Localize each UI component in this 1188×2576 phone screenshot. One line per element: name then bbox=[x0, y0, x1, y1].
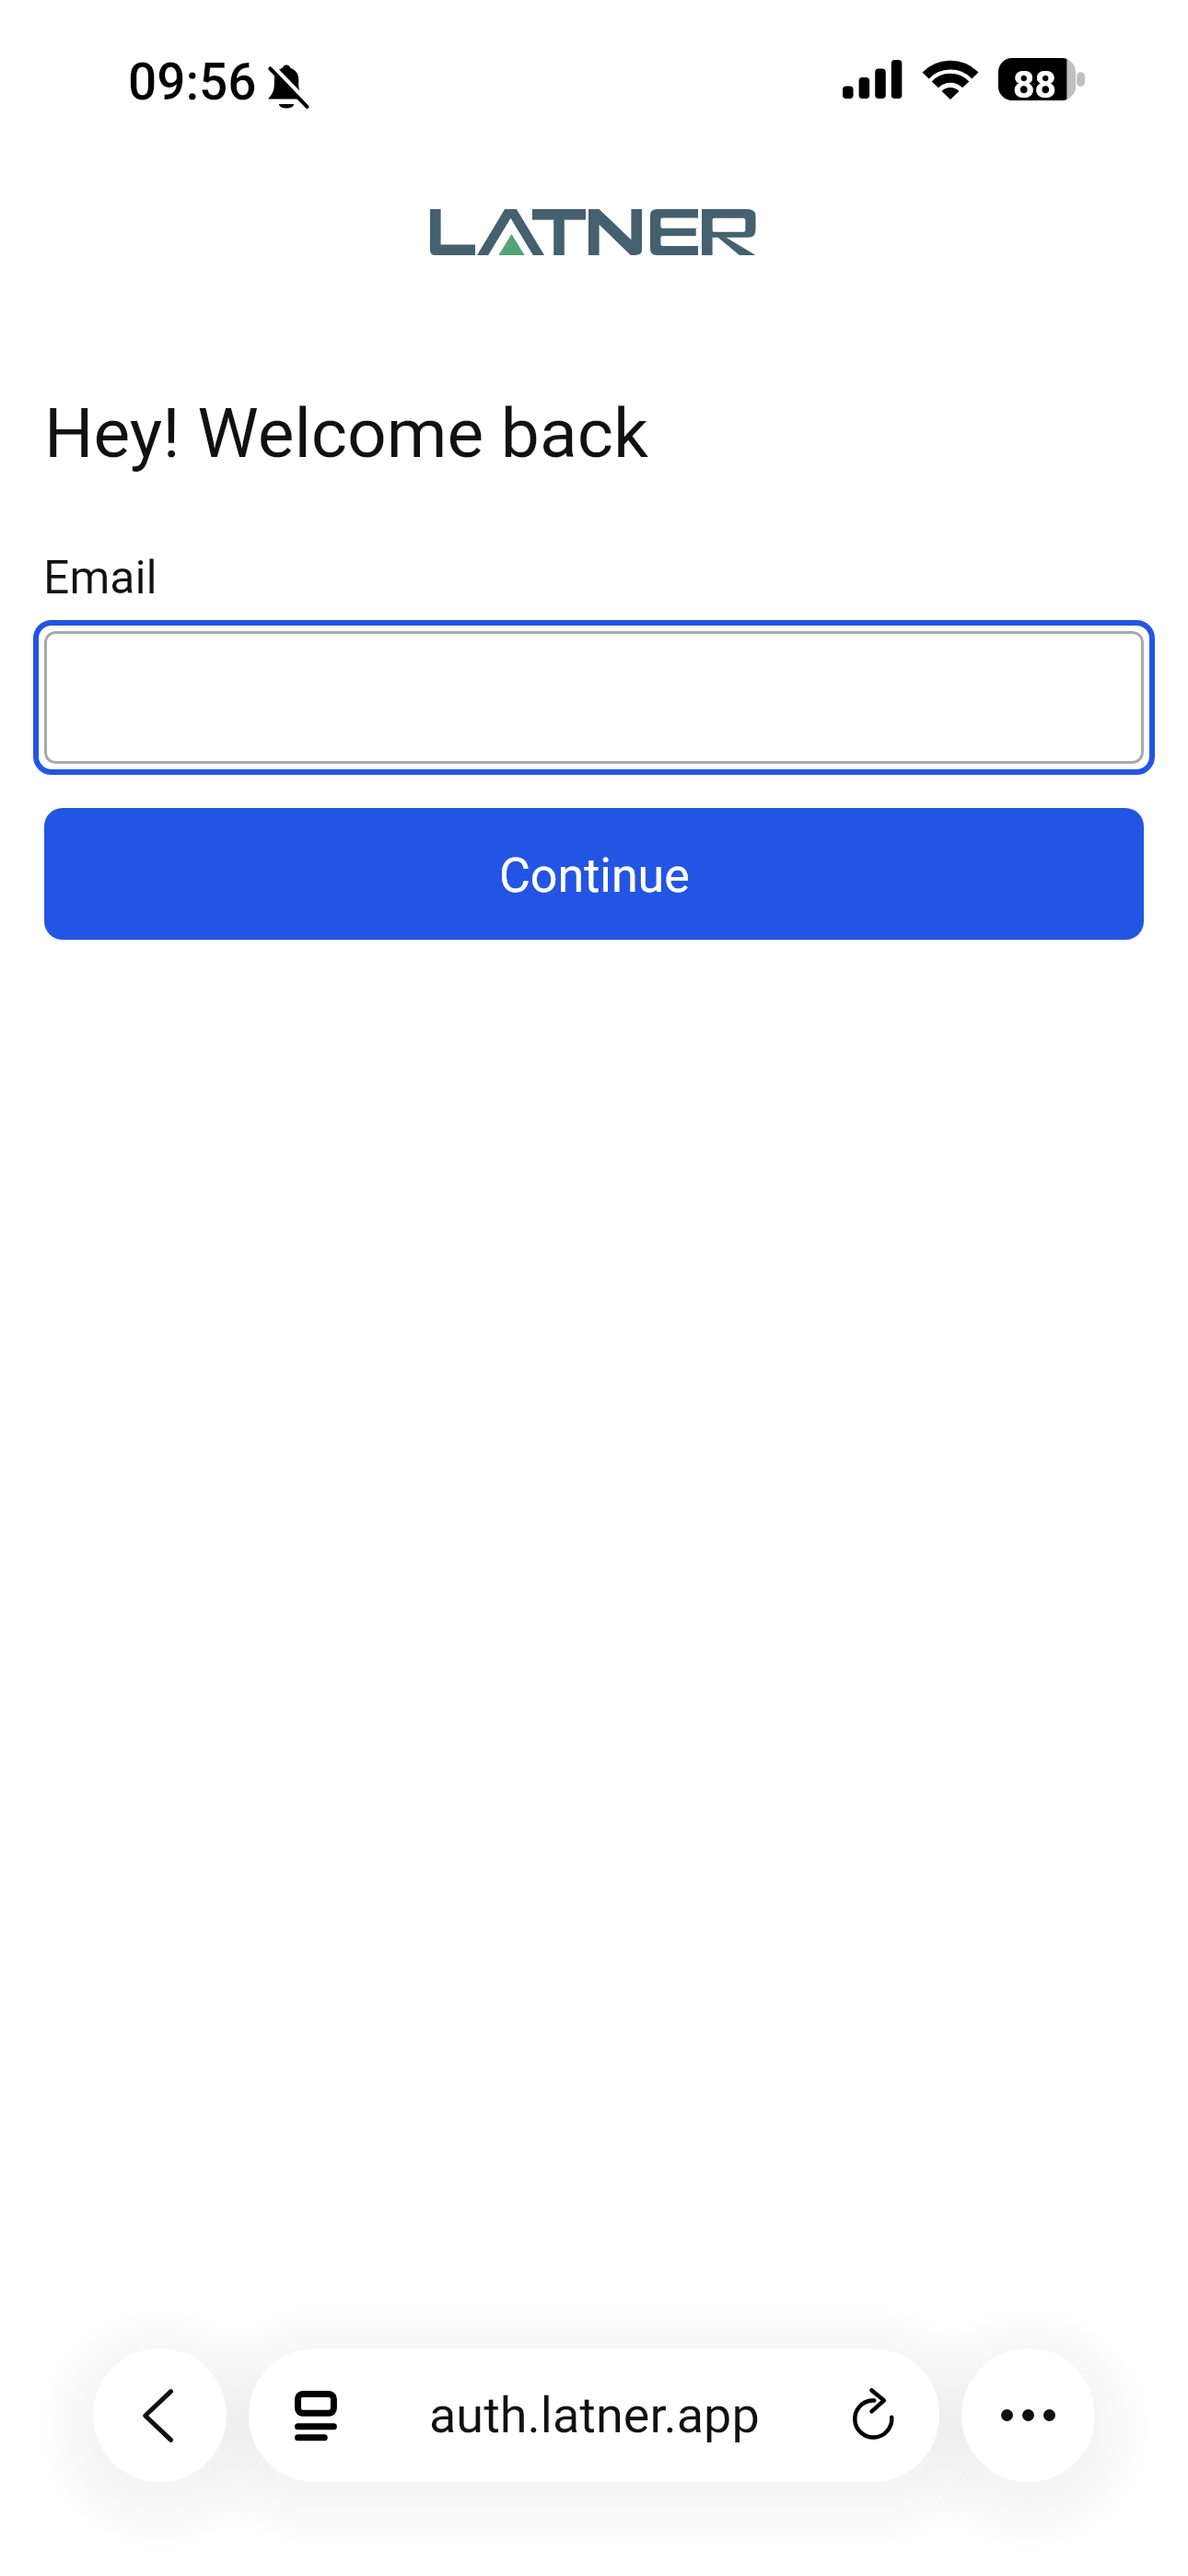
button[interactable]: Continue bbox=[44, 808, 1144, 940]
staticText: Continue bbox=[499, 848, 690, 904]
staticText: auth.latner.app bbox=[429, 2386, 760, 2444]
staticText: 88 bbox=[1013, 63, 1057, 105]
button[interactable]: Back bbox=[93, 2348, 227, 2482]
staticText: Hey! Welcome back bbox=[44, 392, 648, 474]
button[interactable]: Reader mode bbox=[286, 2387, 344, 2444]
button[interactable]: Reload page bbox=[847, 2387, 904, 2444]
button[interactable]: More options bbox=[961, 2348, 1095, 2482]
button[interactable]: Email input field bbox=[33, 620, 1155, 775]
staticText: 09:56 bbox=[128, 53, 257, 111]
staticText: Email bbox=[43, 551, 157, 605]
button[interactable]: auth.latner.app bbox=[249, 2348, 939, 2482]
